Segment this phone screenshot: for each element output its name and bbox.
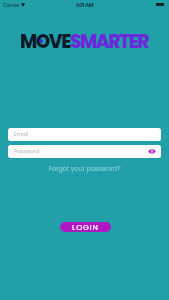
staticText: Carrier [3, 2, 20, 9]
staticText: Password [14, 148, 39, 155]
button[interactable]: Email [8, 128, 161, 141]
staticText: Email [14, 131, 29, 138]
button[interactable]: Password [8, 145, 161, 158]
button[interactable]: LOGIN [60, 222, 111, 232]
button[interactable]: Forgot your password? [46, 163, 124, 174]
button[interactable]: Show password [148, 149, 156, 154]
staticText: 1:01 AM [76, 1, 94, 9]
staticText: LOGIN [72, 222, 99, 232]
staticText: MOVE [20, 29, 70, 55]
staticText: Forgot your password? [49, 164, 121, 173]
staticText: SMARTER [70, 29, 149, 55]
